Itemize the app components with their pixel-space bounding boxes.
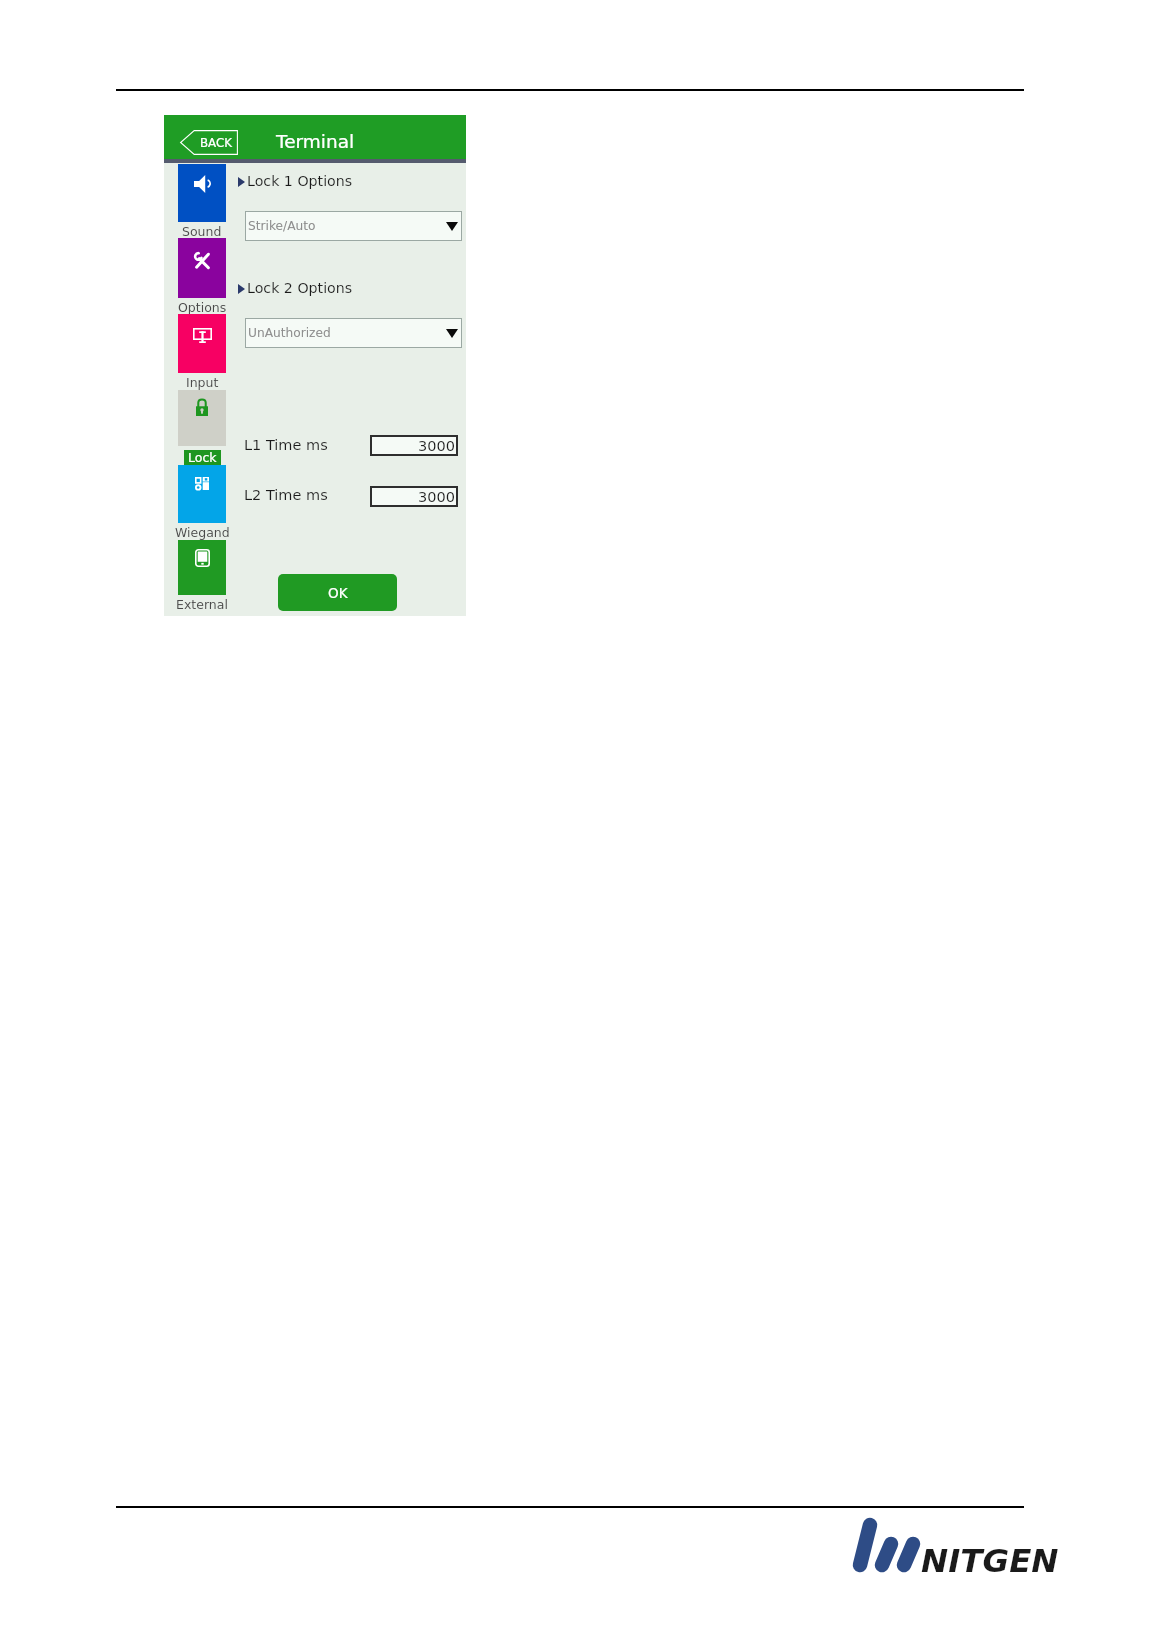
staticText: Strike/Auto	[248, 219, 316, 233]
button[interactable]: External	[154, 540, 250, 611]
button[interactable]: 3000	[370, 486, 458, 507]
button[interactable]: Input	[154, 314, 250, 389]
button[interactable]: Sound	[154, 164, 250, 238]
button[interactable]: Lock	[154, 390, 250, 464]
staticText: Sound	[182, 224, 222, 239]
button[interactable]: Lock 1 Options	[238, 173, 344, 190]
staticText: External	[176, 597, 228, 612]
staticText: BACK	[200, 136, 232, 150]
button[interactable]: Lock 2 Options	[238, 280, 344, 297]
button[interactable]: UnAuthorized	[245, 318, 462, 348]
staticText: Lock 2 Options	[247, 280, 353, 297]
staticText: L2 Time ms	[244, 487, 328, 504]
staticText: Wiegand	[175, 525, 230, 540]
button[interactable]: OK	[278, 574, 397, 611]
staticText: OK	[328, 585, 348, 601]
button[interactable]: Back	[180, 130, 238, 155]
staticText: UnAuthorized	[248, 326, 331, 340]
button[interactable]: 3000	[370, 435, 458, 456]
staticText: Options	[178, 300, 227, 315]
button[interactable]: Wiegand	[154, 465, 250, 539]
staticText: NITGEN	[921, 1542, 1059, 1580]
staticText: 3000	[418, 489, 455, 506]
staticText: L1 Time ms	[244, 437, 328, 454]
staticText: 3000	[418, 438, 455, 455]
button[interactable]: Options	[154, 238, 250, 314]
staticText: Lock 1 Options	[247, 173, 353, 190]
staticText: Terminal	[276, 131, 355, 153]
button[interactable]: Strike/Auto	[245, 211, 462, 241]
staticText: Lock	[188, 450, 217, 465]
staticText: Input	[186, 375, 219, 390]
